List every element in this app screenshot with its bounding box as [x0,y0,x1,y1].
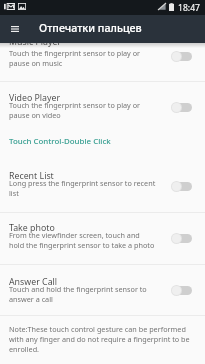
staticText: list [9,188,19,198]
staticText: pause on video [9,110,61,120]
staticText: Video Player [9,92,61,104]
staticText: Music Player [9,36,62,48]
staticText: enrolled. [9,344,40,354]
staticText: 18:47 [178,2,200,14]
staticText: Take photo [9,222,55,234]
staticText: Touch the fingerprint sensor to play or [9,100,141,110]
staticText: Touch and hold the fingerprint sensor to [9,284,147,294]
staticText: Answer Call [9,276,58,288]
button[interactable]: Toggle [171,233,192,244]
staticText: Touch Control-Double Click [9,136,111,147]
button[interactable]: Open navigation menu [5,15,25,43]
staticText: Note:These touch control gesture can be … [9,324,186,334]
button[interactable]: Toggle [171,102,192,113]
staticText: Long press the fingerprint sensor to rec… [9,178,156,188]
button[interactable]: Toggle [171,51,192,62]
staticText: From the viewfinder screen, touch and [9,230,140,240]
button[interactable]: Toggle [171,181,192,192]
staticText: with any finger and do not require a fin… [9,334,190,344]
staticText: hold the fingerprint sensor to take a ph… [9,240,155,250]
staticText: pause on music [9,58,63,68]
staticText: Touch the fingerprint sensor to play or [9,48,141,58]
staticText: Отпечатки пальцев [39,21,142,36]
staticText: answer a call [9,294,53,304]
button[interactable]: Toggle [171,285,192,296]
button[interactable]: Touch Control-Double Click [0,136,205,147]
staticText: Recent List [9,170,54,182]
